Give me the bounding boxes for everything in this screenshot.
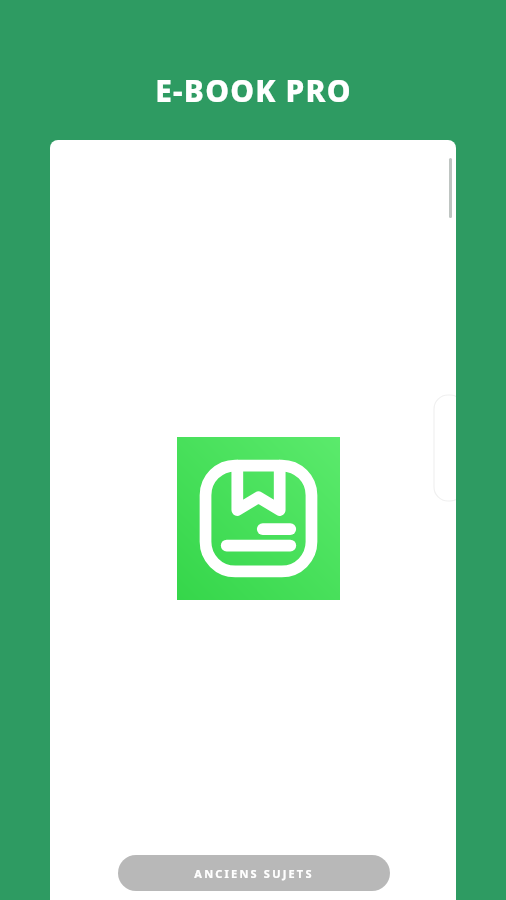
button[interactable]: ANCIENS SUJETS <box>118 855 390 891</box>
button[interactable]: E-Book Pro app icon <box>177 437 340 600</box>
staticText: E-BOOK PRO <box>155 70 352 110</box>
staticText: ANCIENS SUJETS <box>194 866 314 881</box>
